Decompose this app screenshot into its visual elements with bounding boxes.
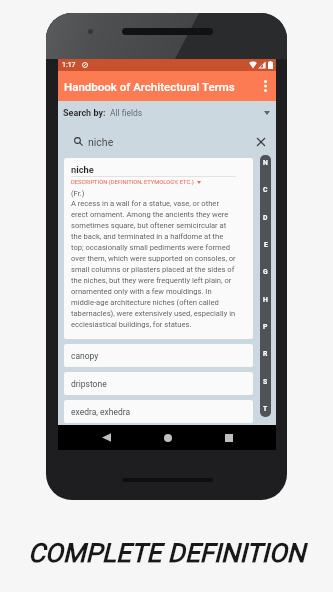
staticText: DESCRIPTION (DEFINITION, ETYMOLOGY, ETC.… bbox=[71, 179, 194, 186]
button[interactable]: Search by: bbox=[58, 101, 276, 125]
staticText: H bbox=[263, 296, 268, 304]
staticText: Handbook of Architectural Terms bbox=[64, 80, 235, 93]
staticText: C bbox=[263, 186, 268, 194]
staticText: niche bbox=[71, 164, 94, 175]
button[interactable]: Alphabet index bbox=[260, 155, 271, 417]
button[interactable]: canopy bbox=[64, 344, 253, 367]
staticText: 1:17 bbox=[62, 61, 76, 69]
staticText: canopy bbox=[71, 351, 99, 361]
button[interactable]: More options bbox=[254, 71, 276, 101]
staticText: E bbox=[264, 241, 268, 249]
button[interactable]: Clear search bbox=[254, 135, 267, 148]
staticText: dripstone bbox=[71, 379, 107, 389]
staticText: S bbox=[263, 378, 268, 386]
staticText: niche bbox=[88, 136, 114, 148]
button[interactable]: dripstone bbox=[64, 372, 253, 395]
staticText: Search by: bbox=[63, 108, 106, 119]
staticText: T bbox=[263, 405, 268, 413]
staticText: P bbox=[263, 323, 268, 331]
button[interactable]: niche bbox=[64, 158, 253, 339]
staticText: All fields bbox=[110, 108, 143, 118]
staticText: R bbox=[263, 350, 268, 358]
staticText: exedra, exhedra bbox=[71, 407, 131, 417]
staticText: N bbox=[263, 159, 268, 167]
staticText: D bbox=[263, 214, 268, 222]
button[interactable]: exedra, exhedra bbox=[64, 400, 253, 423]
button[interactable]: Home bbox=[137, 425, 198, 450]
button[interactable]: Back bbox=[76, 425, 137, 450]
staticText: COMPLETE DEFINITION bbox=[0, 538, 333, 568]
staticText: G bbox=[263, 268, 268, 276]
staticText: (Fr.) A recess in a wall for a statue, v… bbox=[71, 189, 236, 329]
button[interactable]: Recent apps bbox=[198, 425, 259, 450]
